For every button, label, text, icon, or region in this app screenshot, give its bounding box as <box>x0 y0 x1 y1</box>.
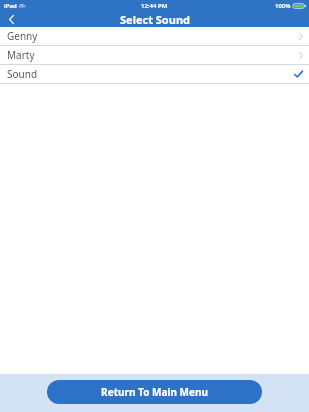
button[interactable]: Marty <box>0 46 309 64</box>
staticText: Genny <box>7 29 38 43</box>
button[interactable]: Return To Main Menu <box>47 380 262 404</box>
staticText: 100% <box>275 2 291 10</box>
staticText: Return To Main Menu <box>101 385 208 399</box>
staticText: Select Sound <box>120 12 190 27</box>
button[interactable]: Back <box>0 11 22 27</box>
staticText: Sound <box>7 67 38 81</box>
staticText: Marty <box>7 48 35 62</box>
button[interactable]: Genny <box>0 27 309 45</box>
button[interactable]: Sound <box>0 65 309 83</box>
staticText: iPad <box>4 2 17 10</box>
staticText: 12:44 PM <box>141 2 168 10</box>
